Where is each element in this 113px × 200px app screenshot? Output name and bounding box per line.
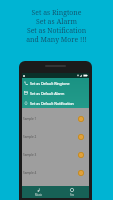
staticText: Sample 2 [23,135,37,139]
button[interactable]: Play [78,134,84,140]
staticText: Set as Ringtone Set as Alarm Set as Noti… [26,8,87,44]
staticText: Sample 1 [23,117,37,121]
staticText: Set as Default Alarm [30,91,65,96]
button[interactable]: Set as Default Ringtone [22,78,89,88]
staticText: Sample 4 [23,171,37,175]
staticText: Fav [70,193,75,197]
button[interactable]: Sample 2 [22,128,89,146]
button[interactable]: Sample 3 [22,146,89,164]
button[interactable]: Play [78,116,84,122]
button[interactable]: Play [78,170,84,176]
button[interactable]: Fav [55,186,89,198]
button[interactable]: Set as Default Alarm [22,88,89,98]
staticText: Set as Default Ringtone [30,81,70,86]
button[interactable]: Sample 4 [22,164,89,182]
button[interactable]: Music [22,186,55,198]
button[interactable]: Sample 1 [22,110,89,128]
staticText: Music [35,193,43,197]
button[interactable]: Set as Default Notification [22,98,89,108]
staticText: Set as Default Notification [30,101,74,106]
button[interactable]: Play [78,152,84,158]
staticText: Sample 3 [23,153,37,157]
